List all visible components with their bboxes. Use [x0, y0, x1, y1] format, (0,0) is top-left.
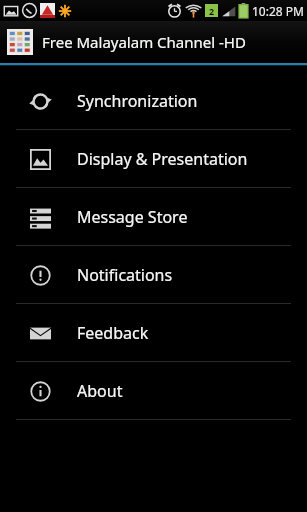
staticText: Free Malayalam Channel -HD: [42, 32, 246, 52]
other: Synchronization: [30, 91, 51, 112]
other: About: [30, 381, 51, 402]
staticText: 10:28 PM: [252, 3, 304, 19]
button[interactable]: Feedback: [0, 304, 307, 362]
button[interactable]: Message Store: [0, 188, 307, 246]
staticText: About: [77, 380, 123, 402]
staticText: Message Store: [77, 206, 188, 228]
button[interactable]: Synchronization: [0, 72, 307, 130]
button[interactable]: Display and Presentation: [0, 130, 307, 188]
other: Notifications: [30, 265, 51, 286]
staticText: Synchronization: [77, 90, 198, 112]
staticText: Display & Presentation: [77, 148, 248, 170]
staticText: Feedback: [77, 322, 149, 344]
other: Display and Presentation: [30, 149, 51, 170]
other: Message Store: [30, 207, 51, 228]
button[interactable]: Notifications: [0, 246, 307, 304]
button[interactable]: About: [0, 362, 307, 420]
staticText: 2: [209, 5, 215, 17]
staticText: Notifications: [77, 264, 173, 286]
other: Feedback: [30, 323, 51, 344]
